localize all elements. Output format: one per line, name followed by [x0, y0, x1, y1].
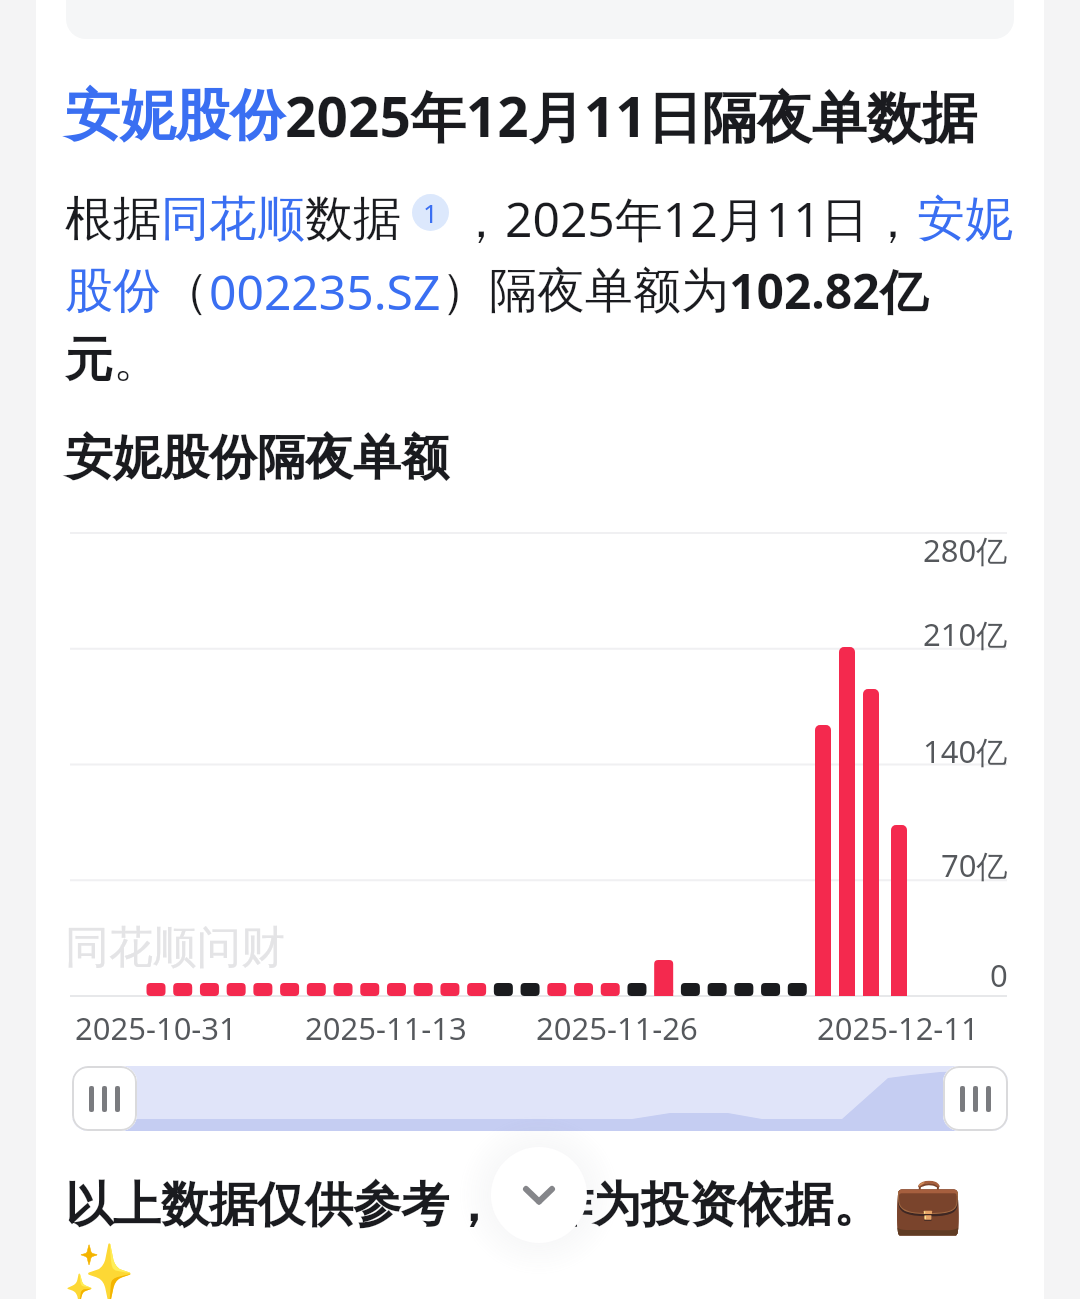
staticText: 2025-10-31 [75, 1007, 237, 1049]
button[interactable]: 安妮 [917, 189, 1013, 249]
staticText: 102.82亿 [729, 258, 928, 324]
button[interactable]: 安妮股份 [65, 81, 285, 150]
staticText: 2025-12-11 [817, 1007, 979, 1049]
button[interactable]: 1 [412, 194, 449, 231]
staticText: 隔夜单额为 [489, 261, 729, 321]
staticText: 同花顺问财 [65, 920, 285, 975]
staticText: 根据 [65, 189, 161, 249]
button[interactable] [72, 1066, 137, 1131]
staticText: 以上数据仅供参考，不作为投资依据。 [65, 1175, 881, 1235]
staticText: ，2025年12月11日， [457, 186, 917, 252]
staticText: ✨ [63, 1240, 136, 1299]
staticText: 。 [113, 330, 161, 390]
button[interactable]: 002235.SZ [209, 259, 441, 324]
button[interactable]: 同花顺 [161, 189, 305, 249]
staticText: ） [441, 261, 489, 321]
staticText: 元 [65, 330, 113, 390]
staticText: 2025年12月11日隔夜单数据 [285, 78, 977, 153]
staticText: 0 [990, 954, 1008, 996]
staticText: 140亿 [923, 730, 1008, 772]
button[interactable]: 股份 [65, 261, 161, 321]
button[interactable] [491, 1147, 587, 1243]
staticText: 280亿 [923, 529, 1008, 571]
staticText: 70亿 [941, 844, 1008, 886]
staticText: 💼 [893, 1172, 963, 1238]
staticText: 210亿 [923, 613, 1008, 655]
staticText: 2025-11-26 [536, 1007, 698, 1049]
staticText: 2025-11-13 [305, 1007, 467, 1049]
button[interactable] [943, 1066, 1008, 1131]
staticText: （ [161, 261, 209, 321]
staticText: 安妮股份隔夜单额 [65, 428, 449, 488]
staticText: 数据 [305, 189, 401, 249]
staticText: 1 [423, 195, 438, 230]
